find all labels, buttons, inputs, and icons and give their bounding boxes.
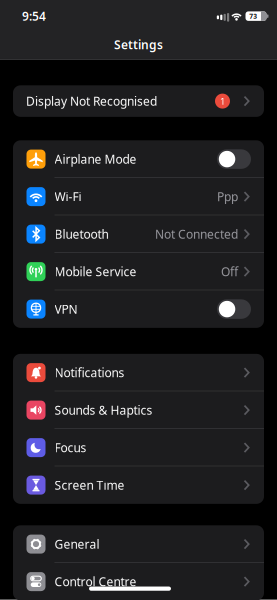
button[interactable]: Bluetooth xyxy=(13,215,264,253)
staticText: 9:54 xyxy=(22,8,46,24)
staticText: Screen Time xyxy=(54,477,124,493)
staticText: Mobile Service xyxy=(54,264,136,279)
staticText: 1 xyxy=(220,95,225,107)
staticText: Sounds & Haptics xyxy=(54,402,152,418)
button[interactable]: Display Not Recognised xyxy=(13,85,264,117)
button[interactable]: Control Centre xyxy=(13,563,264,600)
button[interactable]: VPN xyxy=(217,299,251,319)
staticText: Wi-Fi xyxy=(54,189,81,204)
button[interactable]: General xyxy=(13,525,264,563)
staticText: Ppp xyxy=(217,189,238,204)
button[interactable]: Airplane Mode xyxy=(217,149,251,169)
staticText: Not Connected xyxy=(155,226,238,242)
staticText: Settings xyxy=(114,37,163,53)
staticText: Airplane Mode xyxy=(54,151,136,167)
button[interactable]: Focus xyxy=(13,429,264,466)
staticText: Off xyxy=(221,264,238,279)
button[interactable]: Screen Time xyxy=(13,466,264,504)
staticText: General xyxy=(54,536,99,552)
button[interactable]: Wi-Fi xyxy=(13,178,264,215)
staticText: Focus xyxy=(54,440,86,455)
staticText: VPN xyxy=(54,301,77,317)
button[interactable]: Mobile Service xyxy=(13,253,264,290)
staticText: Notifications xyxy=(54,365,124,380)
staticText: 73 xyxy=(249,12,257,21)
staticText: Display Not Recognised xyxy=(26,93,157,109)
button[interactable]: Sounds & Haptics xyxy=(13,391,264,429)
staticText: Control Centre xyxy=(54,574,136,589)
staticText: Bluetooth xyxy=(54,226,108,242)
button[interactable]: Notifications xyxy=(13,354,264,391)
